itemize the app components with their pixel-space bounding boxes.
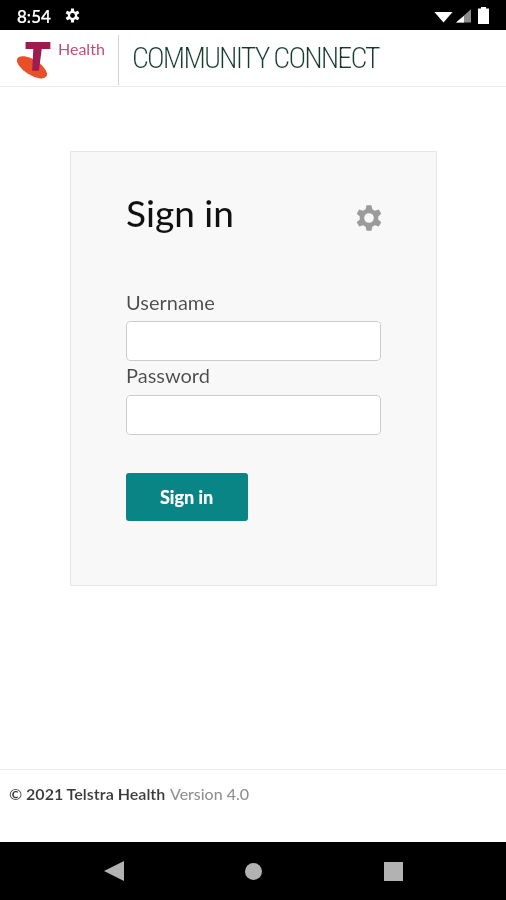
staticText: Sign in — [126, 190, 235, 234]
staticText: COMMUNITY CONNECT — [132, 40, 379, 75]
staticText: Health — [58, 39, 105, 58]
staticText: © 2021 Telstra Health — [9, 784, 170, 803]
staticText: 8:54 — [17, 6, 51, 26]
staticText: Username — [126, 290, 215, 314]
button[interactable] — [126, 395, 381, 435]
button[interactable]: Sign in — [126, 473, 248, 521]
button[interactable]: Home — [227, 845, 279, 897]
button[interactable]: Settings — [351, 200, 387, 236]
staticText: Password — [126, 363, 210, 387]
staticText: Version 4.0 — [170, 784, 250, 803]
button[interactable] — [126, 321, 381, 361]
button[interactable]: Recents — [367, 845, 419, 897]
staticText: Sign in — [160, 486, 214, 508]
button[interactable]: Back — [88, 845, 140, 897]
